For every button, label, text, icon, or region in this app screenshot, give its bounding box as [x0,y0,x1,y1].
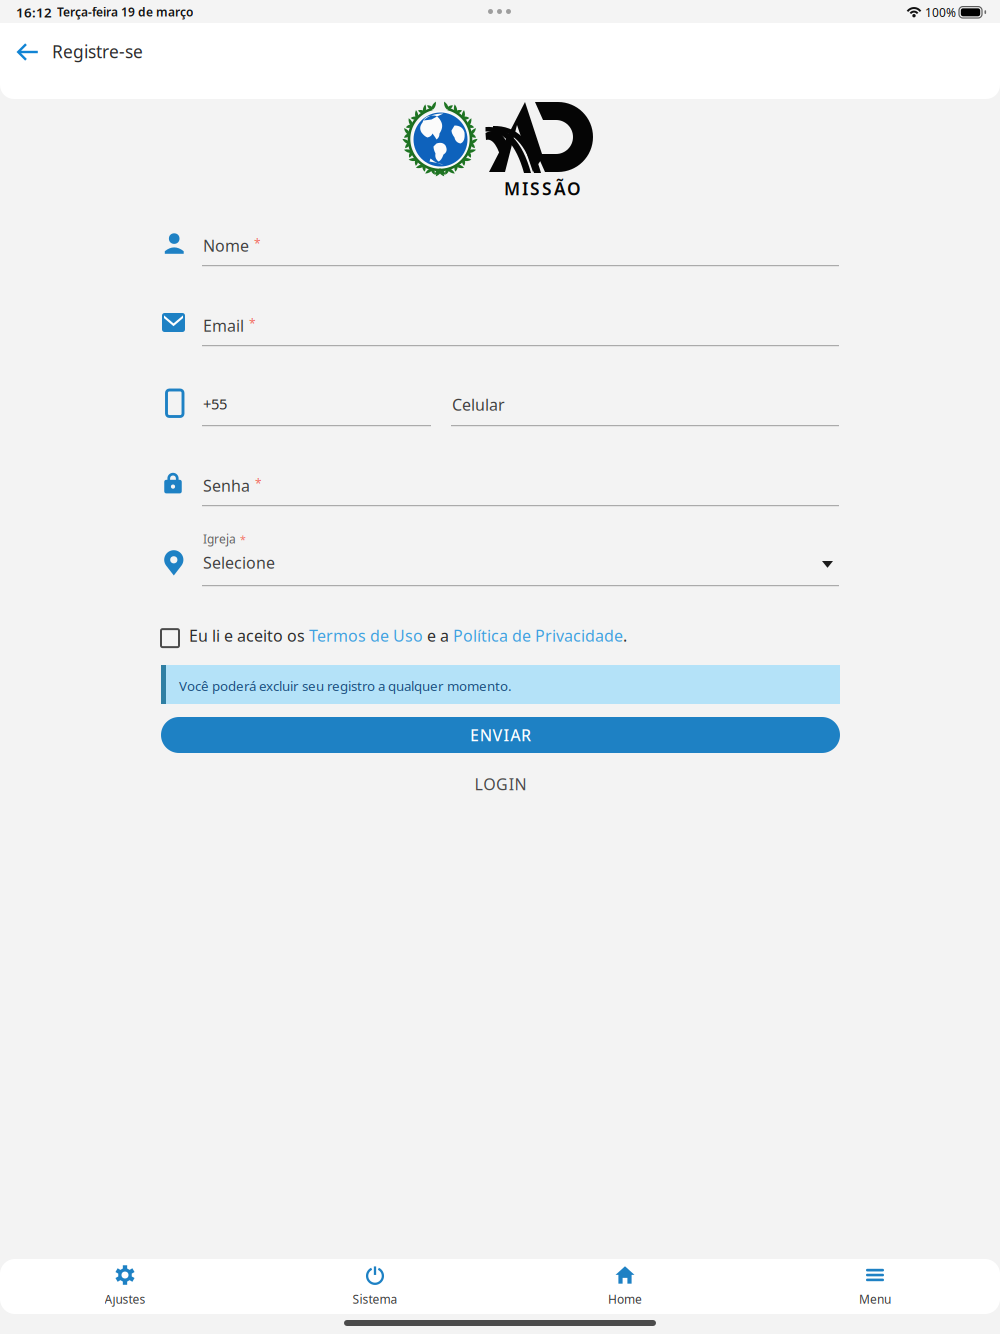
staticText: Senha [203,475,250,496]
button[interactable]: Política de Privacidade [453,625,623,646]
staticText: Terça-feira 19 de março [57,4,193,20]
staticText: Registre-se [52,40,143,63]
button[interactable]: LOGIN [161,769,840,799]
staticText: * [240,532,246,547]
staticText: 16:12 [16,3,52,21]
staticText: Ajustes [104,1291,145,1307]
button[interactable]: Menu [750,1259,1000,1313]
staticText: ENVIAR [470,724,531,746]
staticText: +55 [203,394,227,413]
staticText: e a [423,625,453,646]
staticText: * [254,235,261,251]
staticText: Home [608,1291,642,1307]
staticText: Menu [859,1291,891,1307]
staticText: Email [203,315,244,336]
button[interactable]: Ajustes [0,1259,250,1313]
button[interactable]: Termos de Uso [309,625,423,646]
button[interactable]: Voltar [9,32,47,72]
staticText: 100% [925,4,956,20]
staticText: Política de Privacidade [453,625,623,646]
button[interactable]: ENVIAR [161,717,840,753]
staticText: Selecione [203,552,275,573]
staticText: Você poderá excluir seu registro a qualq… [179,677,512,695]
staticText: Celular [452,394,505,415]
button[interactable]: Sistema [250,1259,500,1313]
button[interactable]: Home [500,1259,750,1313]
staticText: Eu li e aceito os [189,625,309,646]
staticText: Sistema [352,1291,397,1307]
button[interactable]: Eu li e aceito os termos [161,627,179,645]
staticText: MISSÃO [504,177,581,200]
staticText: . [623,625,627,646]
staticText: Termos de Uso [309,625,423,646]
staticText: Igreja [203,531,236,547]
staticText: * [255,475,262,491]
staticText: LOGIN [474,773,527,795]
staticText: * [249,315,256,331]
staticText: Nome [203,235,249,256]
